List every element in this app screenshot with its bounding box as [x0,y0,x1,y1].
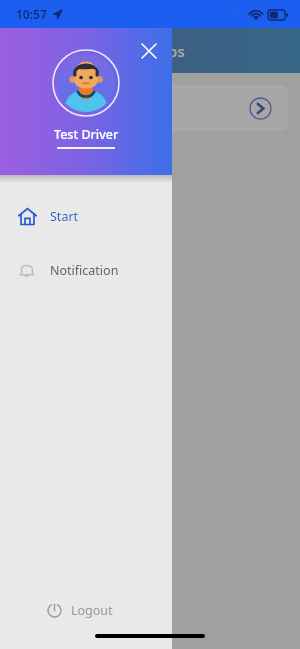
staticText: Notification [50,262,119,279]
staticText: Logout [71,602,113,619]
staticText: 10:57 [16,6,47,22]
button[interactable]: Notification [0,251,172,289]
staticText: Test Driver [54,126,119,143]
button[interactable]: Open trip [12,85,288,131]
button[interactable]: Close [138,40,160,62]
staticText: Trips [150,41,185,61]
button[interactable]: Open trip [249,97,272,120]
button[interactable]: Start [0,197,172,235]
button[interactable]: Logout [0,593,172,627]
staticText: Start [50,208,79,225]
